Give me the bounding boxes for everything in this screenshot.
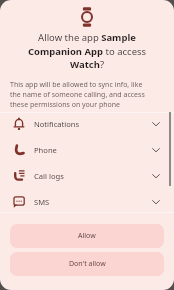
button[interactable]: Allow: [10, 224, 164, 248]
button[interactable]: SMS: [0, 189, 174, 215]
button[interactable]: Don't allow: [10, 252, 164, 276]
staticText: Phone: [34, 145, 57, 155]
staticText: Call logs: [34, 171, 64, 181]
staticText: This app will be allowed to sync info, l…: [10, 80, 152, 110]
button[interactable]: Call logs: [0, 163, 174, 189]
staticText: Allow: [78, 231, 96, 241]
button[interactable]: Notifications: [0, 111, 174, 137]
staticText: SMS: [34, 197, 50, 207]
staticText: Notifications: [34, 119, 80, 129]
staticText: Don't allow: [69, 259, 106, 269]
staticText: Allow the app Sample Companion App to ac…: [16, 31, 158, 70]
button[interactable]: Phone: [0, 137, 174, 163]
